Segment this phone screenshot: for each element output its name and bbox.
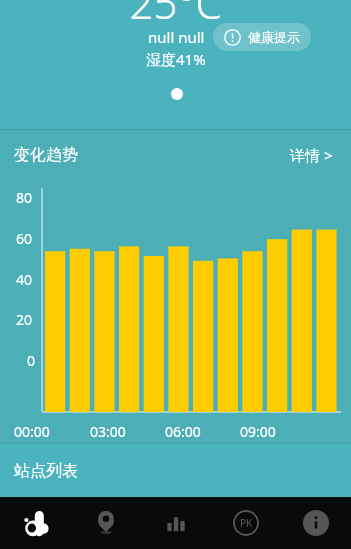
staticText: 湿度41% (146, 49, 206, 69)
staticText: 详情 > (290, 145, 333, 165)
staticText: 03:00 (90, 422, 126, 441)
button[interactable]: 站点列表 (0, 444, 351, 497)
staticText: 站点列表 (14, 461, 78, 481)
button[interactable]: 健康提示 (213, 23, 311, 51)
button[interactable]: PK (211, 497, 281, 549)
staticText: 06:00 (165, 422, 201, 441)
staticText: 0 (27, 351, 36, 370)
button[interactable]: 详情 > (286, 141, 337, 169)
staticText: 25°C (129, 0, 222, 31)
staticText: 40 (16, 270, 33, 289)
staticText: 健康提示 (248, 29, 300, 45)
staticText: 60 (16, 229, 33, 248)
staticText: 20 (16, 310, 33, 329)
staticText: 变化趋势 (14, 145, 78, 165)
staticText: null null (148, 27, 205, 47)
button[interactable]: Home (0, 497, 71, 549)
staticText: 80 (16, 188, 33, 207)
button[interactable]: Info (281, 497, 351, 549)
staticText: 09:00 (240, 422, 276, 441)
staticText: 00:00 (14, 422, 50, 441)
button[interactable]: Map (71, 497, 141, 549)
staticText: PK (240, 516, 253, 530)
button[interactable]: Statistics (141, 497, 211, 549)
